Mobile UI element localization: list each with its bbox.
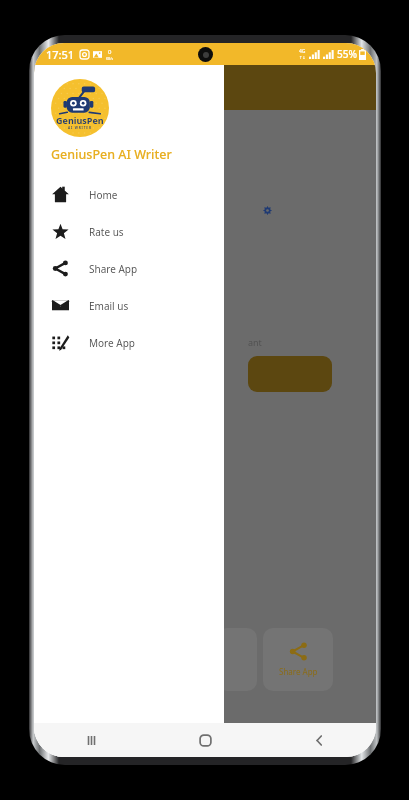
staticText: Share App bbox=[89, 262, 138, 276]
staticText: Share App bbox=[279, 666, 318, 677]
staticText: ant bbox=[248, 336, 262, 348]
staticText: ↑↓ bbox=[299, 55, 306, 60]
button[interactable]: Email us bbox=[34, 287, 224, 324]
staticText: 0 bbox=[108, 48, 112, 56]
button[interactable]: More App bbox=[34, 324, 224, 361]
button[interactable]: Rate us bbox=[217, 628, 257, 691]
button[interactable]: Recents bbox=[34, 723, 148, 757]
staticText: Email us bbox=[89, 299, 129, 313]
staticText: 4G bbox=[299, 48, 306, 55]
staticText: GeniusPen bbox=[56, 114, 104, 126]
staticText: 17:51 bbox=[46, 47, 75, 62]
staticText: Rate us bbox=[89, 225, 124, 239]
button[interactable]: Rate us bbox=[34, 213, 224, 250]
staticText: GeniusPen AI Writer bbox=[51, 146, 172, 163]
staticText: KB/s bbox=[106, 56, 114, 61]
button[interactable]: Share App bbox=[263, 628, 333, 691]
button[interactable]: Home bbox=[34, 176, 224, 213]
button[interactable]: Share App bbox=[34, 250, 224, 287]
staticText: Home bbox=[89, 188, 118, 202]
staticText: A I W R I T E R bbox=[68, 126, 92, 130]
staticText: 55% bbox=[337, 47, 357, 61]
button[interactable]: Generate bbox=[248, 356, 332, 392]
button[interactable]: Home bbox=[148, 723, 262, 757]
button[interactable]: Back bbox=[262, 723, 376, 757]
staticText: More App bbox=[89, 336, 135, 350]
